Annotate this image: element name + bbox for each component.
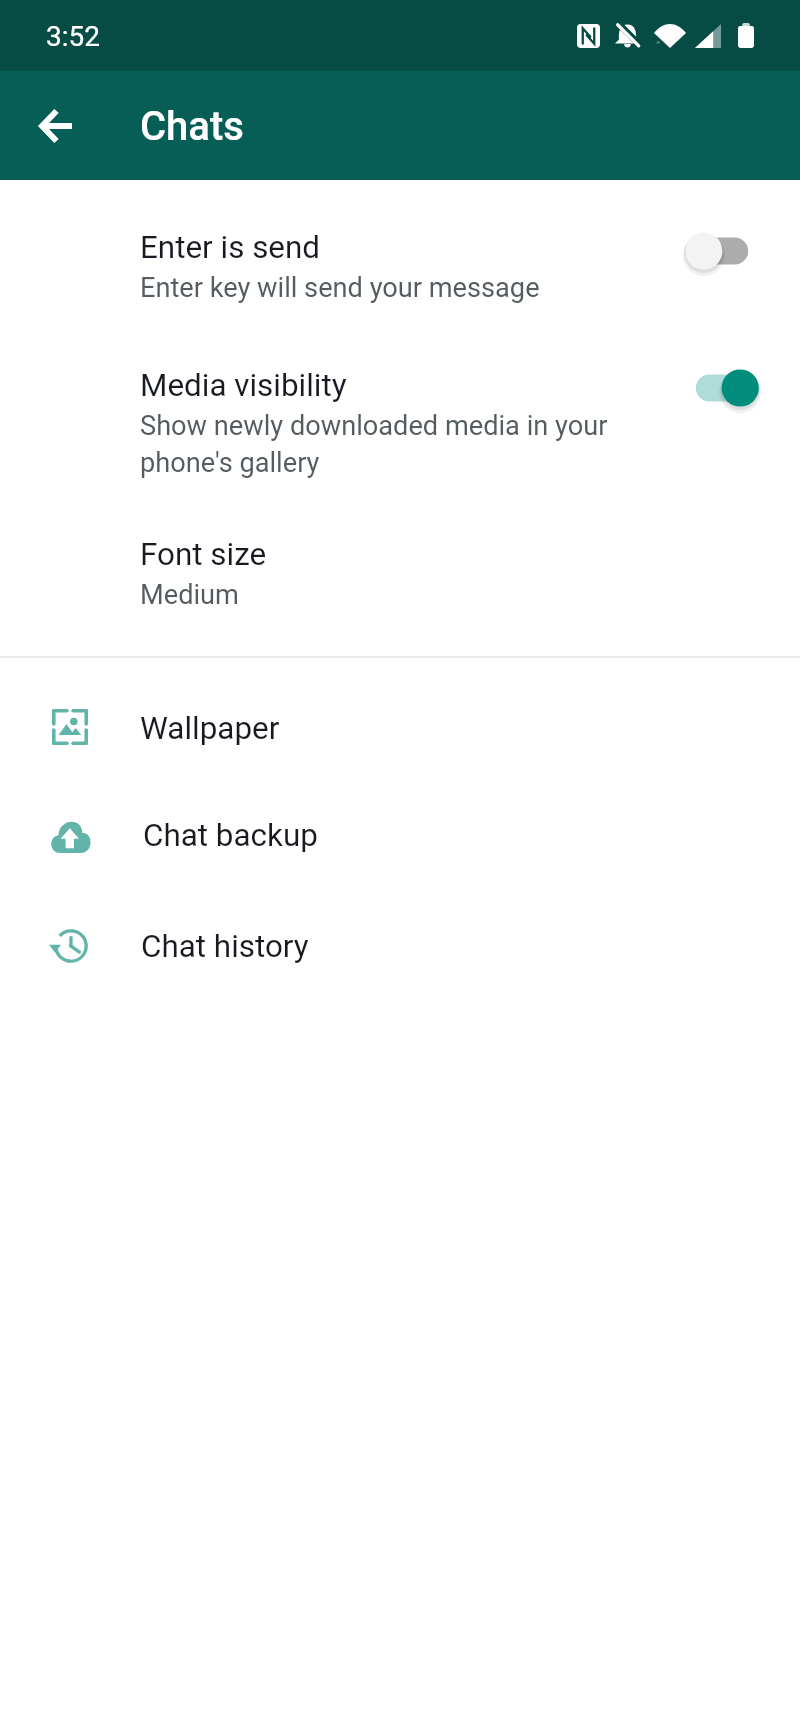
staticText: Medium <box>140 579 239 611</box>
staticText: Show newly downloaded media in your phon… <box>140 410 630 478</box>
button[interactable]: Font size <box>0 529 800 657</box>
staticText: Media visibility <box>140 367 347 404</box>
staticText: Enter key will send your message <box>140 272 540 304</box>
staticText: Font size <box>140 536 267 573</box>
button[interactable]: Enter is send <box>0 207 800 369</box>
button[interactable]: Back <box>8 78 104 174</box>
staticText: Enter is send <box>140 229 321 266</box>
button[interactable]: Off <box>684 229 764 273</box>
button[interactable]: Media visibility <box>0 369 800 529</box>
staticText: 3:52 <box>46 20 100 53</box>
button[interactable]: Chat backup <box>0 765 800 875</box>
staticText: Chat history <box>141 928 309 965</box>
staticText: Chat backup <box>143 817 318 854</box>
button[interactable]: Wallpaper <box>0 657 800 765</box>
staticText: Chats <box>140 103 244 150</box>
staticText: Wallpaper <box>140 710 280 747</box>
button[interactable]: Chat history <box>0 875 800 985</box>
button[interactable]: On <box>680 366 760 410</box>
